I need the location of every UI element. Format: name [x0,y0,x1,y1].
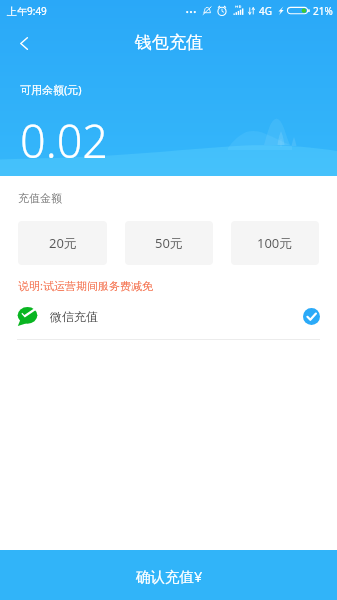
staticText: 21% [313,4,333,18]
button[interactable]: 20元 [18,221,107,265]
staticText: 确认充值¥ [136,566,203,586]
button[interactable]: 50元 [125,221,213,265]
staticText: 20元 [49,234,77,252]
staticText: 微信充值 [50,309,98,324]
staticText: 钱包充值 [135,32,203,53]
staticText: 上午9:49 [7,4,47,18]
staticText: 100元 [257,234,293,252]
staticText: 充值金额 [18,191,62,205]
button[interactable]: Back [4,21,44,65]
staticText: 可用余额(元) [20,82,82,97]
button[interactable]: 微信充值 [0,299,337,333]
staticText: 0.02 [20,110,109,171]
button[interactable]: 确认充值¥ [0,550,337,600]
staticText: 4G [259,4,272,18]
button[interactable]: 100元 [231,221,319,265]
staticText: 说明:试运营期间服务费减免 [18,278,153,293]
staticText: 50元 [155,234,183,252]
